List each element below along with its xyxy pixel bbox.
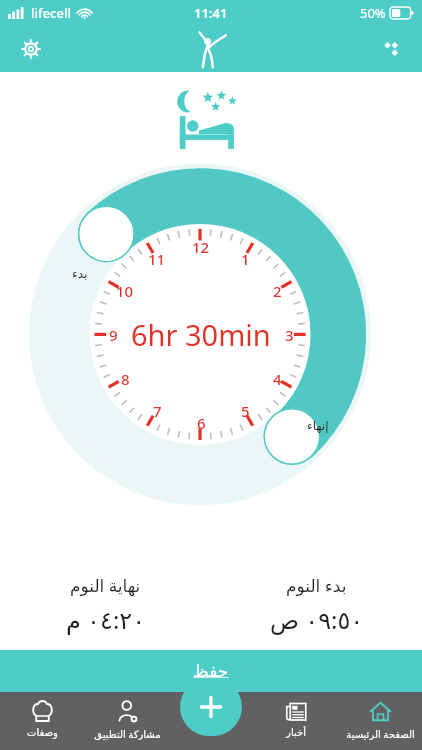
staticText: بدء النوم bbox=[286, 574, 347, 597]
button[interactable]: Add bbox=[180, 678, 242, 736]
staticText: 1 bbox=[241, 249, 250, 269]
staticText: حفظ bbox=[193, 661, 229, 681]
staticText: ٠٩:٥٠ ص bbox=[270, 603, 364, 636]
button[interactable]: وصفات bbox=[0, 692, 85, 750]
staticText: 11 bbox=[148, 249, 166, 269]
staticText: 5 bbox=[241, 401, 250, 421]
staticText: الصفحة الرئيسية bbox=[346, 727, 415, 741]
staticText: 4 bbox=[273, 369, 282, 389]
staticText: 6 bbox=[197, 413, 206, 433]
button[interactable]: Settings bbox=[14, 32, 48, 66]
button[interactable]: إنهاء bbox=[290, 398, 346, 454]
button[interactable]: بدء bbox=[52, 246, 108, 302]
staticText: 7 bbox=[153, 401, 162, 421]
staticText: أخبار bbox=[286, 727, 306, 739]
staticText: 3 bbox=[285, 325, 294, 345]
staticText: 2 bbox=[273, 281, 282, 301]
staticText: وصفات bbox=[27, 727, 58, 739]
staticText: 9 bbox=[109, 325, 118, 345]
staticText: lifecell bbox=[31, 4, 71, 22]
button[interactable]: أخبار bbox=[254, 692, 338, 750]
staticText: مشاركة التطبيق bbox=[94, 727, 161, 741]
staticText: ٠٤:٢٠ م bbox=[66, 603, 146, 636]
staticText: 10 bbox=[116, 281, 134, 301]
button[interactable]: More bbox=[374, 32, 408, 66]
button[interactable]: الصفحة الرئيسية bbox=[338, 692, 422, 750]
button[interactable]: مشاركة التطبيق bbox=[85, 692, 170, 750]
staticText: 6hr 30min bbox=[131, 315, 271, 354]
staticText: 12 bbox=[192, 237, 210, 257]
staticText: إنهاء bbox=[307, 419, 329, 433]
button[interactable]: حفظ bbox=[0, 650, 422, 692]
staticText: 11:41 bbox=[194, 4, 228, 22]
staticText: نهاية النوم bbox=[70, 574, 141, 597]
staticText: 50% bbox=[360, 4, 386, 22]
staticText: بدء bbox=[72, 267, 88, 281]
staticText: 8 bbox=[121, 369, 130, 389]
